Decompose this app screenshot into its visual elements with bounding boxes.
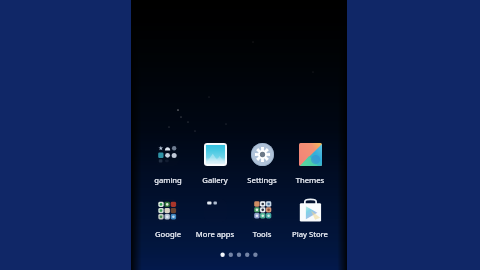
button[interactable]: Play Store <box>287 196 333 240</box>
staticText: Settings <box>235 175 289 270</box>
staticText: Play Store <box>283 229 337 270</box>
button[interactable]: Google <box>145 196 191 240</box>
button[interactable]: Themes <box>287 140 333 185</box>
staticText: Gallery <box>188 175 242 270</box>
button[interactable]: More apps <box>192 196 238 240</box>
button[interactable]: Tools <box>239 196 285 240</box>
staticText: More apps <box>188 229 242 270</box>
staticText: gaming <box>141 175 195 270</box>
staticText: Themes <box>283 175 337 270</box>
staticText: Tools <box>235 229 289 270</box>
button[interactable]: Settings <box>239 140 285 185</box>
button[interactable]: Gallery <box>192 140 238 185</box>
button[interactable]: gaming <box>145 140 191 185</box>
staticText: Google <box>141 229 195 270</box>
